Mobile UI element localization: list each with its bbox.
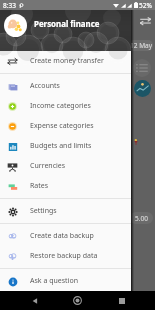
staticText: Settings	[30, 206, 57, 216]
button[interactable]: Create data backup	[0, 226, 131, 246]
button[interactable]: Accounts	[0, 76, 131, 96]
staticText: Rates	[30, 181, 49, 191]
button[interactable]: Ask a question	[0, 271, 131, 291]
button[interactable]: 12 May	[129, 40, 153, 51]
staticText: Create data backup	[30, 231, 94, 241]
staticText: Currencies	[30, 161, 66, 171]
staticText: 12 May	[130, 41, 152, 50]
staticText: 8:33	[3, 1, 16, 10]
staticText: 5.00	[135, 214, 148, 223]
staticText: Accounts	[30, 81, 60, 91]
button[interactable]: Expense categories	[0, 116, 131, 136]
button[interactable]: Rates	[0, 176, 131, 196]
button[interactable]: Back	[25, 291, 44, 310]
staticText: Income categories	[30, 101, 91, 111]
button[interactable]: Budgets and limits	[0, 136, 131, 156]
button[interactable]: Home	[68, 291, 87, 310]
button[interactable]: Recent apps	[112, 291, 131, 310]
button[interactable]: Restore backup data	[0, 246, 131, 266]
staticText: Personal finance	[34, 19, 100, 30]
staticText: Budgets and limits	[30, 141, 92, 151]
staticText: Restore backup data	[30, 251, 98, 261]
button[interactable]: Settings	[0, 201, 131, 221]
button[interactable]: List view	[133, 59, 151, 77]
staticText: 52%	[139, 1, 152, 10]
button[interactable]: Income categories	[0, 96, 131, 116]
button[interactable]: Currencies	[0, 156, 131, 176]
staticText: Create money transfer	[30, 56, 104, 66]
staticText: Expense categories	[30, 121, 94, 131]
staticText: Ask a question	[30, 276, 78, 286]
button[interactable]: Transfer	[135, 11, 155, 32]
button[interactable]: Create money transfer	[0, 51, 131, 71]
button[interactable]: Add record	[134, 80, 151, 97]
